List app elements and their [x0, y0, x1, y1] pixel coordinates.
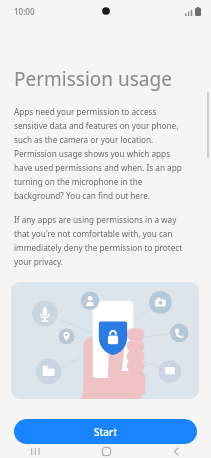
staticText: Apps need your permission to access sens…	[14, 106, 189, 202]
staticText: If any apps are using permissions in a w…	[14, 214, 189, 268]
button[interactable]: Start	[14, 419, 197, 444]
button[interactable]: Back	[141, 444, 211, 458]
staticText: Permission usage	[14, 66, 172, 92]
staticText: 10:00	[14, 6, 35, 17]
button[interactable]: Recents	[0, 444, 71, 458]
button[interactable]: Home	[71, 444, 141, 458]
staticText: Start	[94, 425, 118, 439]
